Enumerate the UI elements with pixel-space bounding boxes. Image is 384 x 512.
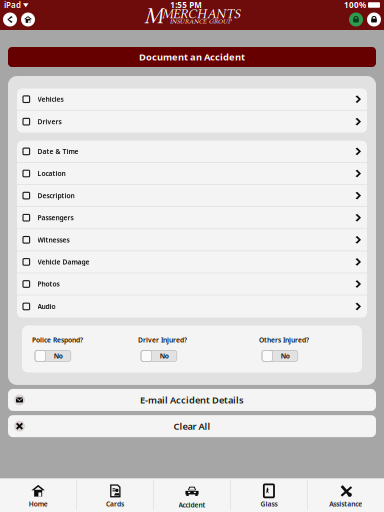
staticText: Description (38, 191, 75, 200)
staticText: Photos (38, 280, 60, 288)
button[interactable]: Lock (367, 12, 381, 26)
button[interactable]: Home (21, 12, 35, 26)
staticText: Date & Time (38, 147, 79, 156)
button[interactable]: Audio (17, 295, 367, 317)
staticText: MERCHANTS (162, 6, 240, 22)
button[interactable]: Back (3, 12, 17, 26)
button[interactable]: Accident (154, 479, 230, 512)
button[interactable]: Location (17, 163, 367, 185)
staticText: E-mail Accident Details (140, 394, 244, 406)
button[interactable]: Date & Time (17, 141, 367, 163)
staticText: M (144, 2, 163, 29)
button[interactable]: Clear All (8, 415, 376, 437)
staticText: Location (38, 169, 66, 178)
button[interactable]: Cards (77, 479, 153, 512)
staticText: Accident (178, 500, 205, 509)
button[interactable]: Document an Accident (8, 47, 376, 67)
staticText: Driver Injured? (138, 335, 187, 344)
staticText: Passengers (38, 213, 74, 222)
staticText: Home (29, 499, 48, 508)
button[interactable]: Vehicle Damage (17, 251, 367, 273)
button[interactable]: No (35, 350, 71, 361)
staticText: No (160, 351, 169, 360)
staticText: Vehicles (38, 95, 64, 104)
button[interactable]: Vehicles (17, 88, 367, 111)
button[interactable]: Secure (349, 12, 363, 26)
button[interactable]: Assistance (308, 479, 384, 512)
staticText: 1:55 PM (170, 0, 202, 10)
button[interactable]: No (262, 350, 298, 361)
button[interactable]: Drivers (17, 111, 367, 133)
staticText: Police Respond? (32, 335, 83, 344)
staticText: Drivers (38, 117, 62, 126)
staticText: 100% (344, 0, 366, 10)
staticText: Assistance (329, 499, 362, 508)
staticText: INSURANCE GROUP (170, 17, 232, 25)
staticText: Clear All (173, 420, 210, 432)
staticText: Audio (38, 302, 56, 311)
staticText: No (281, 351, 290, 360)
button[interactable]: Witnesses (17, 229, 367, 251)
staticText: Document an Accident (139, 51, 245, 63)
button[interactable]: E-mail Accident Details (8, 389, 376, 411)
staticText: Others Injured? (259, 335, 309, 344)
staticText: Cards (106, 499, 124, 508)
button[interactable]: Photos (17, 273, 367, 295)
button[interactable]: Glass (231, 479, 307, 512)
staticText: Vehicle Damage (38, 257, 90, 266)
button[interactable]: Passengers (17, 207, 367, 229)
staticText: No (54, 351, 63, 360)
button[interactable]: Description (17, 185, 367, 207)
staticText: iPad (4, 0, 21, 10)
staticText: Glass (260, 499, 277, 508)
button[interactable]: Home (0, 479, 76, 512)
staticText: Witnesses (38, 235, 70, 244)
button[interactable]: No (141, 350, 177, 361)
